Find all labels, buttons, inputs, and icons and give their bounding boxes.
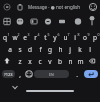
staticText: o xyxy=(83,33,87,42)
button[interactable]: Voice input xyxy=(42,16,54,27)
button[interactable]: v xyxy=(45,55,55,67)
button[interactable]: p xyxy=(90,31,100,43)
staticText: x xyxy=(28,57,32,66)
staticText: p xyxy=(93,33,97,42)
staticText: v xyxy=(48,57,52,66)
button[interactable]: Translate xyxy=(56,16,68,27)
staticText: q xyxy=(3,33,7,42)
staticText: y xyxy=(53,33,57,42)
staticText: w xyxy=(12,33,18,42)
button[interactable]: Google search xyxy=(1,1,13,13)
staticText: 9 xyxy=(87,32,90,36)
staticText: Message · ● not english xyxy=(28,4,81,10)
button[interactable]: Clipboard xyxy=(14,1,26,13)
staticText: u xyxy=(63,33,68,42)
button[interactable]: c xyxy=(35,55,45,67)
button[interactable]: Theme xyxy=(72,16,84,27)
button[interactable]: ?123 xyxy=(2,70,15,78)
staticText: , xyxy=(19,70,21,79)
staticText: l xyxy=(89,45,91,54)
staticText: k xyxy=(78,45,82,54)
staticText: 8 xyxy=(77,32,80,36)
button[interactable]: o xyxy=(80,31,90,43)
button[interactable]: u xyxy=(60,31,70,43)
staticText: e xyxy=(23,33,27,42)
staticText: 1 xyxy=(7,32,10,36)
button[interactable]: e xyxy=(20,31,30,43)
button[interactable]: f xyxy=(35,43,45,55)
staticText: . xyxy=(76,70,78,79)
staticText: 5 xyxy=(47,32,50,36)
button[interactable]: d xyxy=(25,43,35,55)
staticText: 3 xyxy=(27,32,30,36)
staticText: j xyxy=(69,45,71,54)
button[interactable]: Backspace xyxy=(86,55,98,67)
button[interactable]: b xyxy=(55,55,65,67)
button[interactable]: Space xyxy=(34,70,69,78)
button[interactable]: Shift xyxy=(1,55,13,67)
button[interactable]: m xyxy=(75,55,85,67)
button[interactable]: . xyxy=(72,68,82,80)
staticText: 7 xyxy=(67,32,70,36)
staticText: EN xyxy=(49,72,54,77)
staticText: g xyxy=(48,45,52,54)
button[interactable]: y xyxy=(50,31,60,43)
button[interactable]: Emoji xyxy=(14,16,26,27)
button[interactable]: k xyxy=(75,43,85,55)
staticText: f xyxy=(39,45,42,54)
staticText: t xyxy=(44,33,47,42)
button[interactable]: r xyxy=(30,31,40,43)
button[interactable]: Hide keyboard xyxy=(9,82,21,93)
button[interactable]: Emoji keyboard xyxy=(23,68,35,80)
button[interactable]: h xyxy=(55,43,65,55)
staticText: a xyxy=(8,45,12,54)
staticText: 6 xyxy=(57,32,60,36)
staticText: r xyxy=(34,33,37,42)
button[interactable]: j xyxy=(65,43,75,55)
button[interactable]: t xyxy=(40,31,50,43)
button[interactable]: Microphone xyxy=(86,16,98,27)
button[interactable]: Enter xyxy=(84,70,98,78)
staticText: d xyxy=(28,45,32,54)
staticText: c xyxy=(38,57,42,66)
button[interactable]: q xyxy=(0,31,10,43)
staticText: s xyxy=(18,45,22,54)
button[interactable]: a xyxy=(5,43,15,55)
button[interactable]: z xyxy=(15,55,25,67)
button[interactable]: Settings xyxy=(87,1,99,13)
staticText: n xyxy=(68,57,73,66)
button[interactable]: x xyxy=(25,55,35,67)
staticText: 0 xyxy=(97,32,100,36)
staticText: ?123 xyxy=(4,72,13,77)
staticText: m xyxy=(77,57,84,66)
button[interactable]: , xyxy=(15,68,25,80)
staticText: 4 xyxy=(37,32,40,36)
button[interactable]: s xyxy=(15,43,25,55)
staticText: b xyxy=(58,57,62,66)
staticText: h xyxy=(58,45,63,54)
button[interactable]: Message · ● not english xyxy=(28,2,84,12)
staticText: 2 xyxy=(17,32,20,36)
button[interactable]: l xyxy=(85,43,95,55)
staticText: z xyxy=(18,57,22,66)
button[interactable]: i xyxy=(70,31,80,43)
button[interactable]: GIF xyxy=(28,16,40,27)
button[interactable]: g xyxy=(45,43,55,55)
button[interactable]: w xyxy=(10,31,20,43)
staticText: i xyxy=(74,33,76,42)
button[interactable]: n xyxy=(65,55,75,67)
button[interactable]: Stickers xyxy=(1,16,13,27)
